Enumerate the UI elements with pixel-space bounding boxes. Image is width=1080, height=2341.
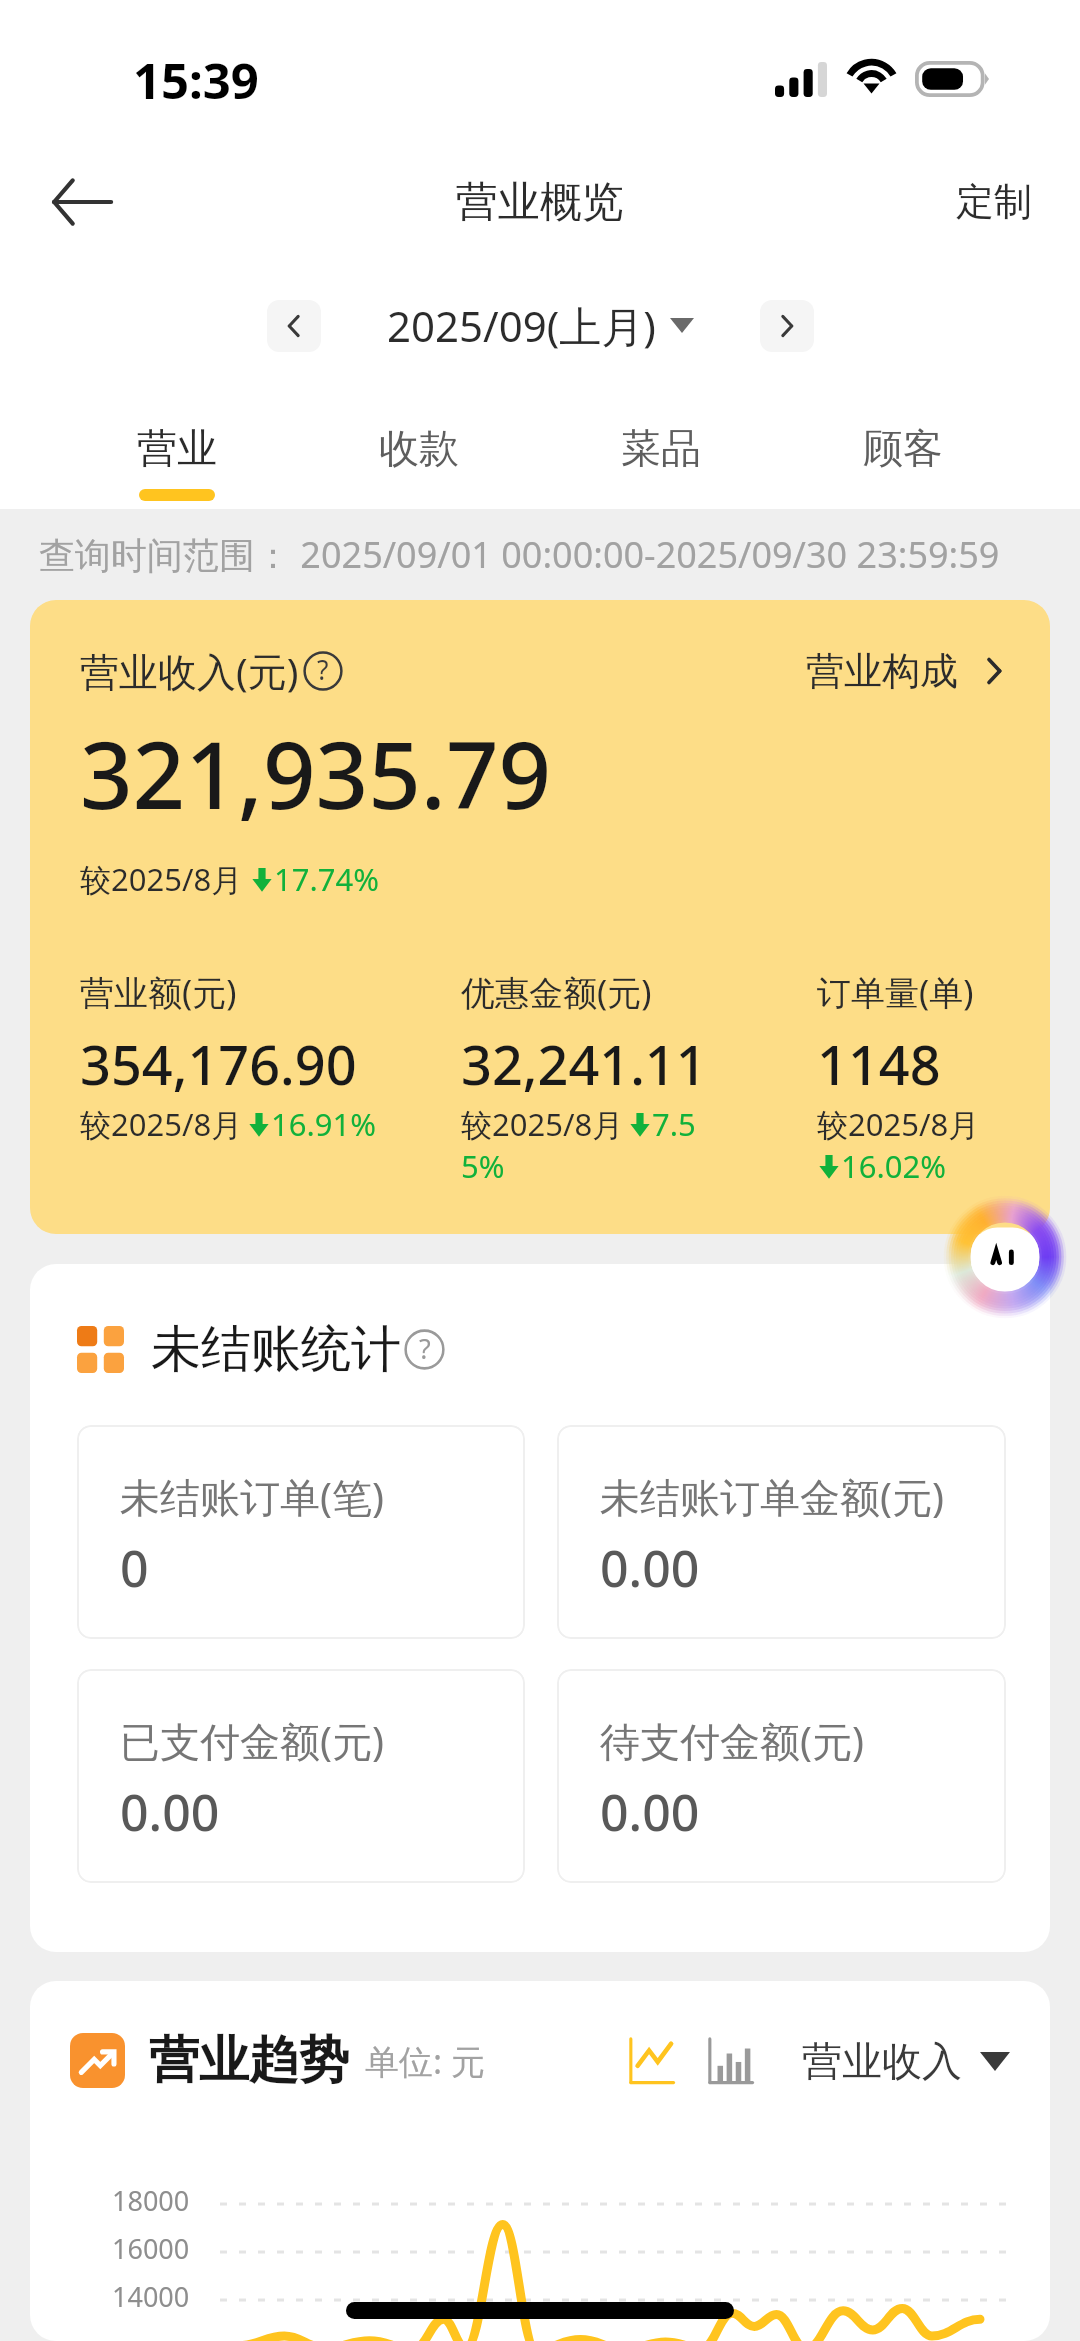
staticText: 5% — [461, 1145, 505, 1187]
button[interactable]: 营业构成 — [806, 647, 1012, 695]
staticText: 32,241.11 — [461, 1027, 707, 1101]
staticText: 0 — [120, 1534, 149, 1602]
staticText: 查询时间范围： 2025/09/01 00:00:00-2025/09/30 2… — [39, 530, 1000, 579]
staticText: 321,935.79 — [80, 711, 552, 836]
button[interactable]: AI assistant — [944, 1196, 1066, 1318]
staticText: 单位: 元 — [365, 2038, 485, 2084]
staticText: 14000 — [112, 2278, 190, 2315]
button[interactable]: 营业收入(元) — [30, 600, 1050, 1234]
staticText: 收款 — [379, 423, 459, 473]
staticText: 16.02% — [841, 1145, 946, 1187]
staticText: 营业趋势 — [149, 2029, 349, 2092]
staticText: 7.5 — [652, 1103, 696, 1145]
staticText: 待支付金额(元) — [600, 1713, 864, 1768]
button[interactable]: 收款 — [298, 398, 540, 509]
staticText: 0.00 — [600, 1778, 700, 1846]
staticText: 较2025/8月 — [80, 858, 243, 900]
staticText: 顾客 — [863, 423, 943, 473]
staticText: 354,176.90 — [80, 1027, 357, 1101]
button[interactable]: 待支付金额(元) — [557, 1669, 1006, 1883]
button[interactable]: 未结账订单金额(元) — [557, 1425, 1006, 1639]
staticText: ? — [317, 652, 329, 688]
staticText: 菜品 — [621, 423, 701, 473]
staticText: 17.74% — [274, 858, 379, 900]
staticText: 18000 — [112, 2182, 190, 2219]
button[interactable]: 未结账订单(笔) — [77, 1425, 525, 1639]
button[interactable]: 营业 — [56, 398, 298, 509]
button[interactable]: Next month — [760, 300, 814, 352]
button[interactable]: Back — [52, 154, 148, 250]
staticText: 营业收入(元) — [80, 644, 299, 697]
staticText: 营业构成 — [806, 647, 958, 695]
staticText: 营业收入 — [802, 2036, 962, 2086]
button[interactable]: 顾客 — [782, 398, 1024, 509]
staticText: 定制 — [956, 178, 1032, 226]
button[interactable]: 2025/09(上月) — [387, 297, 694, 354]
staticText: 未结账统计 — [151, 1318, 401, 1381]
button[interactable]: Previous month — [267, 300, 321, 352]
button[interactable]: 营业收入 — [802, 2036, 1010, 2086]
staticText: 较2025/8月 — [461, 1103, 624, 1145]
staticText: 营业 — [137, 423, 217, 473]
button[interactable]: 菜品 — [540, 398, 782, 509]
staticText: 15:39 — [133, 47, 259, 114]
staticText: 未结账订单金额(元) — [600, 1469, 944, 1524]
staticText: 16.91% — [271, 1103, 376, 1145]
staticText: 0.00 — [120, 1778, 220, 1846]
button[interactable]: 定制 — [956, 178, 1032, 226]
staticText: ? — [419, 1330, 431, 1367]
button[interactable]: Bar chart view — [706, 2037, 754, 2085]
staticText: 16000 — [112, 2230, 190, 2267]
button[interactable]: 已支付金额(元) — [77, 1669, 525, 1883]
staticText: 已支付金额(元) — [120, 1713, 384, 1768]
staticText: 优惠金额(元) — [461, 969, 652, 1015]
staticText: 营业额(元) — [80, 969, 237, 1015]
button[interactable]: Line chart view — [627, 2037, 675, 2085]
staticText: 0.00 — [600, 1534, 700, 1602]
staticText: 1148 — [817, 1027, 941, 1101]
staticText: 未结账订单(笔) — [120, 1469, 384, 1524]
staticText: 2025/09(上月) — [387, 297, 656, 354]
staticText: 营业概览 — [456, 176, 624, 229]
staticText: 较2025/8月 — [817, 1103, 980, 1145]
staticText: 较2025/8月 — [80, 1103, 243, 1145]
staticText: 订单量(单) — [817, 969, 974, 1015]
